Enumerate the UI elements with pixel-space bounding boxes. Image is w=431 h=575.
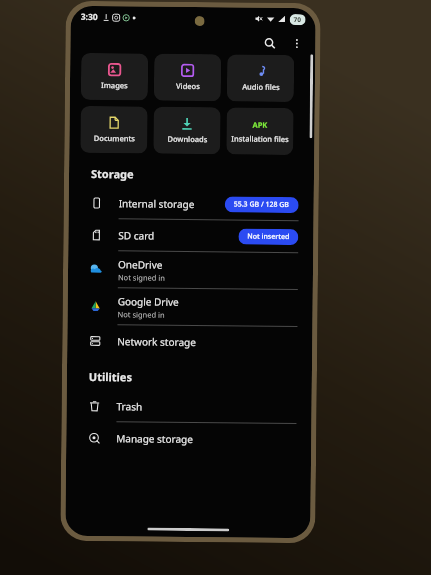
button[interactable]: Google Drive xyxy=(78,288,302,327)
button[interactable]: Documents xyxy=(80,106,148,153)
staticText: SD card xyxy=(118,228,154,243)
staticText: Not signed in xyxy=(117,309,166,320)
staticText: Not inserted xyxy=(247,232,289,242)
button[interactable]: Trash xyxy=(77,390,301,424)
staticText: Audio files xyxy=(242,81,280,92)
button[interactable]: APK xyxy=(226,107,294,155)
staticText: Utilities xyxy=(89,369,133,384)
button[interactable]: Network storage xyxy=(78,325,301,358)
button[interactable]: Internal storage xyxy=(80,187,303,221)
staticText: Images xyxy=(101,80,128,90)
staticText: 3:30 xyxy=(81,11,98,23)
staticText: Not signed in xyxy=(118,272,166,283)
button[interactable]: SD card xyxy=(79,219,302,253)
staticText: Network storage xyxy=(117,334,196,349)
button[interactable]: Videos xyxy=(154,54,221,101)
staticText: Trash xyxy=(116,399,143,413)
button[interactable]: More options xyxy=(285,32,307,54)
staticText: Videos xyxy=(176,81,200,91)
staticText: 70 xyxy=(294,15,302,24)
staticText: Downloads xyxy=(167,134,207,144)
staticText: Internal storage xyxy=(119,196,195,211)
button[interactable]: Images xyxy=(81,53,148,100)
button[interactable]: Search xyxy=(258,32,280,54)
staticText: APK xyxy=(252,120,268,130)
staticText: Storage xyxy=(91,166,134,181)
button[interactable]: OneDrive xyxy=(79,251,302,290)
staticText: Documents xyxy=(93,133,135,143)
staticText: OneDrive xyxy=(118,257,163,272)
staticText: Google Drive xyxy=(118,294,180,309)
staticText: 55.3 GB / 128 GB xyxy=(234,199,290,210)
staticText: Manage storage xyxy=(116,431,193,446)
button[interactable]: Downloads xyxy=(153,107,221,154)
button[interactable]: Manage storage xyxy=(77,422,300,455)
staticText: Installation files xyxy=(231,133,289,144)
button[interactable]: Audio files xyxy=(227,54,294,102)
